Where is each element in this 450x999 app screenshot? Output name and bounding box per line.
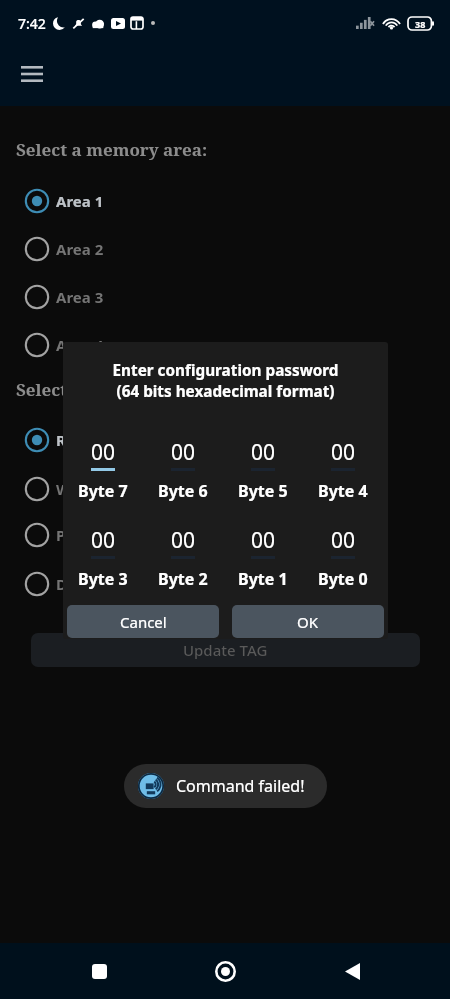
staticText: 00 [251,438,276,467]
staticText: Area 1 [56,191,104,211]
staticText: Byte 0 [318,568,368,590]
staticText: 00 [251,526,276,555]
button[interactable]: Back [324,943,380,999]
staticText: Area 3 [56,287,104,307]
button[interactable]: Area 2 [0,225,450,273]
staticText: Byte 5 [238,480,288,502]
button[interactable]: Cancel [67,605,219,638]
staticText: 00 [171,438,196,467]
button[interactable]: Area 3 [0,273,450,321]
staticText: 38 [415,18,426,30]
staticText: Write password [56,479,173,499]
staticText: Destroy password (disable) [56,574,258,594]
staticText: (64 bits hexadecimal format) [63,381,388,402]
button[interactable]: Privacy password [0,511,450,559]
button[interactable]: Destroy password (disable) [0,560,450,608]
button[interactable]: Update TAG [31,633,420,667]
staticText: 7:42 [18,14,46,33]
staticText: Select a memory area: [16,138,208,161]
button[interactable]: Open navigation menu [14,56,50,92]
staticText: Byte 4 [318,480,368,502]
staticText: Enter configuration password [63,360,388,381]
staticText: 00 [171,526,196,555]
staticText: Byte 3 [78,568,128,590]
staticText: Byte 2 [158,568,208,590]
staticText: 00 [331,438,356,467]
staticText: Command failed! [176,775,305,797]
staticText: Privacy password [56,525,186,545]
staticText: Byte 7 [78,480,128,502]
staticText: Byte 6 [158,480,208,502]
button[interactable]: Recent apps [71,943,127,999]
button[interactable]: Home [197,943,253,999]
staticText: Byte 1 [238,568,288,590]
staticText: Area 4 [56,335,104,355]
button[interactable]: OK [232,605,384,638]
button[interactable]: Area 1 [0,177,450,225]
staticText: 00 [91,438,116,467]
staticText: Update TAG [183,640,268,660]
staticText: Area 2 [56,239,104,259]
staticText: Select a password: [16,378,174,401]
staticText: 00 [91,526,116,555]
staticText: Read password [56,430,169,450]
button[interactable]: Write password [0,465,450,513]
staticText: 00 [331,526,356,555]
button[interactable]: Read password [0,416,450,464]
staticText: OK [297,612,319,632]
button[interactable]: Area 4 [0,321,450,369]
staticText: Cancel [120,612,167,632]
